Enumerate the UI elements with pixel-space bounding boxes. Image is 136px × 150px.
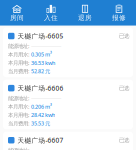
staticText: 当月费用: [8,68,29,74]
staticText: 退房 [78,14,92,21]
button[interactable]: 退房 [68,4,102,21]
staticText: 本月用电: [8,60,29,66]
staticText: 0.206 m³ [31,104,52,109]
staticText: 52.82 元 [31,68,50,74]
staticText: 天樾广场-6605 [17,33,63,39]
staticText: 能源地址: [8,147,29,150]
staticText: 36.53 kwh [31,60,55,66]
staticText: 本月用水: [8,51,29,57]
staticText: 35.53 元 [31,120,50,126]
button[interactable]: 天樾广场-6605 [3,28,133,77]
staticText: 能源地址: [8,43,29,49]
staticText: 本月用水: [8,104,29,109]
staticText: —————— [31,95,61,101]
staticText: 能源地址: [8,95,29,101]
button[interactable]: 天樾广场-6607 [3,132,133,150]
staticText: 0.305 m³ [31,51,52,57]
staticText: 房间 [10,14,24,21]
staticText: 报修 [112,14,126,21]
staticText: 已选 [119,33,129,39]
staticText: 天樾广场-6606 [17,85,63,92]
staticText: 当月费用: [8,120,29,126]
staticText: 已选 [119,85,129,91]
staticText: 已选 [119,137,129,143]
button[interactable]: 报修 [102,4,136,21]
staticText: —————— [31,43,61,49]
button[interactable]: 入住 [34,4,68,21]
staticText: 天樾广场-6607 [17,137,63,144]
staticText: 本月用电: [8,112,29,118]
button[interactable]: 房间 [0,4,34,21]
button[interactable]: 天樾广场-6606 [3,80,133,129]
staticText: 28.42 kwh [31,112,55,118]
staticText: 入住 [44,14,58,21]
